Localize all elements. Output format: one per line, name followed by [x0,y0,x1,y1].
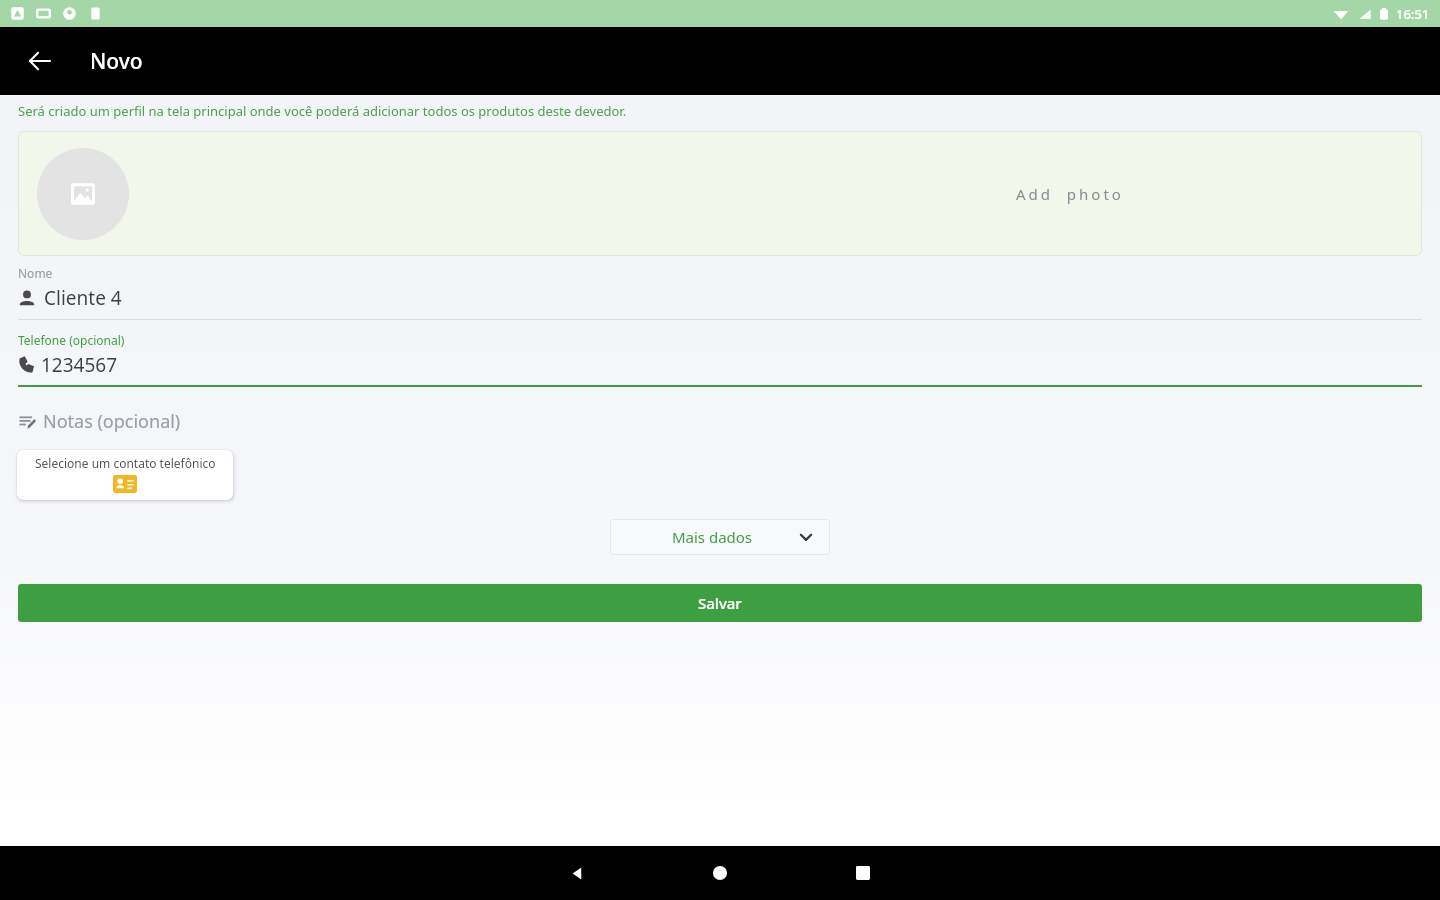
staticText: Nome [18,265,53,281]
staticText: Novo [90,47,143,76]
button[interactable]: Telefone (opcional) [18,332,1422,387]
button[interactable]: Selecione um contato telefônico [17,450,233,500]
button[interactable]: Nome [18,265,1422,320]
staticText: Telefone (opcional) [18,332,125,348]
staticText: Salvar [698,593,742,613]
button[interactable]: Add photo [18,131,1422,256]
button[interactable]: Back [16,37,64,85]
staticText: Cliente 4 [44,285,122,311]
button[interactable]: Back [542,846,612,900]
staticText: Mais dados [626,527,798,547]
other: Selecionar contato [113,475,137,493]
button[interactable]: Home [685,846,755,900]
staticText: Notas (opcional) [43,409,181,434]
staticText: 16:51 [1396,5,1430,23]
staticText: Selecione um contato telefônico [35,455,216,471]
staticText: Add photo [1016,184,1124,204]
button[interactable]: Salvar [18,584,1422,622]
button[interactable]: Mais dados [610,519,830,555]
button[interactable]: Notas (opcional) [18,409,1422,434]
button[interactable]: Recent apps [828,846,898,900]
staticText: Será criado um perfil na tela principal … [18,102,627,120]
staticText: 1234567 [41,352,118,378]
